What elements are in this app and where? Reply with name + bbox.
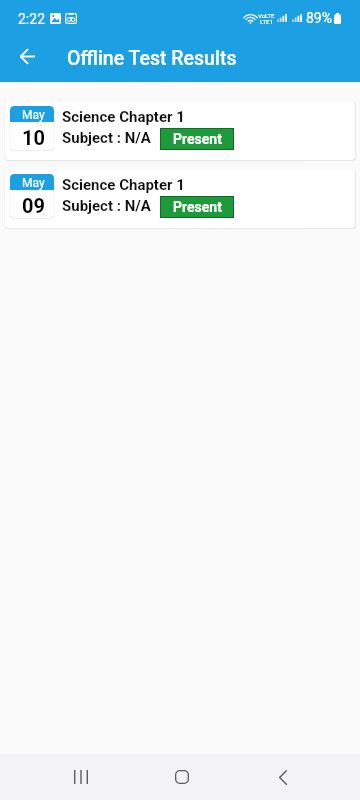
- button[interactable]: Recent apps: [57, 754, 105, 800]
- staticText: Offline Test Results: [67, 47, 237, 70]
- button[interactable]: Back: [11, 40, 43, 72]
- staticText: May: [22, 108, 45, 122]
- button[interactable]: May: [5, 102, 355, 160]
- staticText: 2:22: [18, 11, 45, 27]
- staticText: 09: [22, 194, 45, 217]
- button[interactable]: May: [5, 170, 355, 228]
- button[interactable]: Home: [158, 754, 206, 800]
- staticText: LTE1: [260, 18, 273, 25]
- staticText: Present: [173, 131, 222, 147]
- staticText: Present: [173, 199, 222, 215]
- button[interactable]: Present: [161, 129, 233, 149]
- staticText: Science Chapter 1: [62, 108, 185, 126]
- staticText: Subject : N/A: [62, 129, 151, 147]
- staticText: 89%: [306, 10, 332, 26]
- staticText: May: [22, 176, 45, 190]
- staticText: Science Chapter 1: [62, 176, 185, 194]
- button[interactable]: Back: [259, 754, 307, 800]
- button[interactable]: Present: [161, 197, 233, 217]
- staticText: 10: [22, 126, 45, 149]
- staticText: Subject : N/A: [62, 197, 151, 215]
- staticText: VoLTE: [258, 12, 275, 19]
